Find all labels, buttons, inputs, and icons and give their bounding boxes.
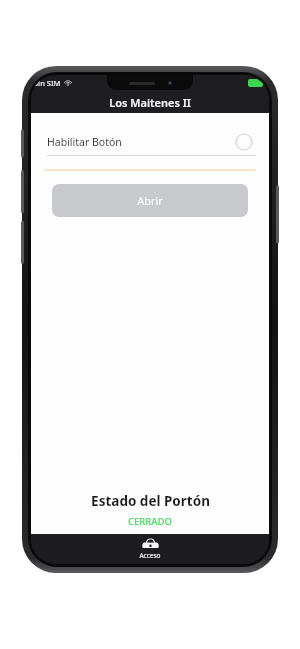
other: Acceso — [142, 538, 159, 549]
staticText: Estado del Portón — [91, 492, 210, 510]
button[interactable]: Habilitar Boton toggle — [235, 133, 253, 151]
staticText: Acceso — [139, 551, 161, 560]
staticText: Habilitar Botón — [47, 135, 122, 149]
staticText: Abrir — [137, 193, 163, 208]
staticText: CERRADO — [128, 515, 172, 528]
staticText: Sin SIM — [34, 78, 61, 88]
button[interactable]: Acceso — [120, 534, 180, 564]
staticText: Los Maitenes II — [109, 95, 191, 110]
button[interactable]: Habilitar Botón — [31, 129, 269, 155]
button[interactable]: Abrir — [52, 184, 248, 217]
